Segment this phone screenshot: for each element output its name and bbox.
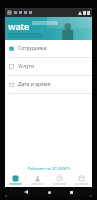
button[interactable]: История bbox=[48, 173, 70, 187]
button[interactable]: Recents bbox=[69, 190, 73, 194]
staticText: Услуги bbox=[18, 63, 35, 70]
staticText: Дата и время bbox=[18, 81, 51, 88]
button[interactable]: Сотрудники bbox=[5, 40, 92, 58]
button[interactable]: Профиль bbox=[70, 173, 92, 187]
button[interactable]: Back bbox=[24, 190, 28, 194]
button[interactable]: Дата и время bbox=[5, 76, 92, 94]
button[interactable]: Записаться bbox=[5, 173, 26, 187]
button[interactable]: Home bbox=[47, 190, 51, 194]
staticText: Работает на YCLIENTS bbox=[28, 166, 70, 171]
button[interactable]: Сотрудники bbox=[26, 173, 48, 187]
staticText: wate bbox=[8, 20, 30, 32]
button[interactable]: Услуги bbox=[5, 58, 92, 76]
staticText: Сотрудники bbox=[18, 45, 47, 52]
